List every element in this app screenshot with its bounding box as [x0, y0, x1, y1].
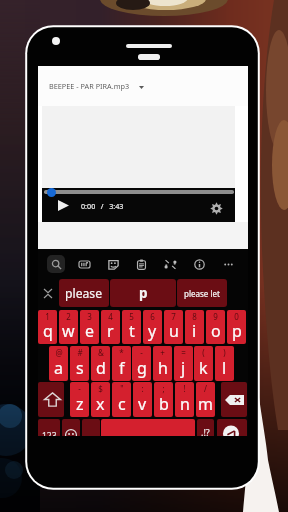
staticText: f [119, 357, 125, 379]
staticText: .!? [201, 426, 210, 436]
staticText: p [139, 284, 148, 302]
button[interactable]: " [112, 382, 131, 417]
staticText: 4 [108, 311, 113, 322]
staticText: z [76, 393, 84, 415]
button[interactable]: Enter [217, 419, 247, 436]
button[interactable]: Clipboard [132, 255, 150, 273]
button[interactable]: Punctuation [197, 419, 214, 436]
staticText: + [160, 347, 165, 358]
staticText: 3 [87, 311, 92, 322]
button[interactable]: ) [215, 346, 234, 381]
staticText: v [138, 393, 147, 415]
staticText: 123 [42, 430, 57, 436]
staticText: $ [98, 383, 103, 394]
staticText: 5 [129, 311, 134, 322]
staticText: s [76, 357, 84, 379]
button[interactable]: Translate [161, 255, 179, 273]
button[interactable]: $ [91, 382, 110, 417]
button[interactable]: Search [47, 255, 65, 273]
staticText: l [222, 357, 227, 379]
button[interactable]: ! [175, 382, 194, 417]
staticText: 7 [171, 311, 176, 322]
staticText: # [77, 347, 83, 358]
button[interactable]: ( [194, 346, 213, 381]
staticText: t [129, 320, 135, 342]
button[interactable]: Shift [38, 382, 64, 417]
staticText: n [180, 393, 190, 415]
button[interactable]: + [153, 346, 172, 381]
staticText: r [107, 320, 114, 342]
staticText: p [232, 320, 242, 342]
staticText: - [78, 383, 81, 394]
button[interactable]: 6 [143, 310, 162, 344]
staticText: @ [55, 347, 63, 358]
staticText: 8 [192, 311, 197, 322]
button[interactable]: * [112, 346, 131, 381]
staticText: x [96, 393, 105, 415]
staticText: j [181, 357, 186, 379]
button[interactable]: Collapse [40, 279, 58, 307]
staticText: d [96, 357, 106, 379]
staticText: y [148, 320, 157, 342]
button[interactable]: please let [177, 279, 227, 307]
button[interactable]: Symbols [38, 419, 60, 436]
button[interactable]: 9 [206, 310, 225, 344]
staticText: ! [183, 383, 186, 394]
staticText: 9 [213, 311, 218, 322]
staticText: please [65, 285, 103, 302]
button[interactable]: p [110, 279, 176, 307]
staticText: : [141, 383, 144, 394]
button[interactable]: & [91, 346, 110, 381]
staticText: b [159, 393, 169, 415]
staticText: u [169, 320, 179, 342]
staticText: please let [184, 288, 220, 299]
staticText: 6 [150, 311, 155, 322]
staticText: - [140, 347, 143, 358]
staticText: 0 [234, 311, 239, 322]
button[interactable]: @ [49, 346, 68, 381]
staticText: / [204, 383, 207, 394]
staticText: o [211, 320, 221, 342]
staticText: h [158, 357, 168, 379]
staticText: ( [202, 347, 205, 358]
button[interactable]: 1 [38, 310, 57, 344]
button[interactable]: - [132, 346, 151, 381]
button[interactable]: - [70, 382, 89, 417]
staticText: e [85, 320, 95, 342]
staticText: c [118, 393, 126, 415]
staticText: " [120, 383, 124, 394]
staticText: = [181, 347, 186, 358]
staticText: m [198, 393, 213, 415]
button[interactable]: Space [101, 419, 195, 436]
button[interactable]: Info [190, 255, 208, 273]
button[interactable]: : [133, 382, 152, 417]
button[interactable]: 8 [185, 310, 204, 344]
staticText: 2 [66, 311, 71, 322]
staticText: a [54, 357, 63, 379]
button[interactable] [38, 66, 248, 106]
button[interactable]: 3 [80, 310, 99, 344]
button[interactable]: please [59, 279, 109, 307]
staticText: ) [223, 347, 226, 358]
staticText: 0:00 / 3:43 [81, 201, 124, 211]
staticText: k [199, 357, 208, 379]
button[interactable]: Stickers [104, 255, 122, 273]
button[interactable]: Language [82, 419, 100, 436]
button[interactable]: 0 [227, 310, 246, 344]
button[interactable]: More options [219, 255, 237, 273]
button[interactable]: Backspace [221, 382, 247, 417]
button[interactable]: # [70, 346, 89, 381]
button[interactable]: 5 [122, 310, 141, 344]
button[interactable]: Emoji [62, 419, 80, 436]
staticText: i [192, 320, 197, 342]
button[interactable]: 7 [164, 310, 183, 344]
staticText: w [62, 320, 75, 342]
button[interactable]: 2 [59, 310, 78, 344]
button[interactable]: / [196, 382, 215, 417]
staticText: & [98, 347, 104, 358]
button[interactable]: 4 [101, 310, 120, 344]
button[interactable]: = [174, 346, 193, 381]
button[interactable]: GIF [75, 255, 93, 273]
staticText: * [119, 347, 124, 358]
button[interactable]: ; [154, 382, 173, 417]
